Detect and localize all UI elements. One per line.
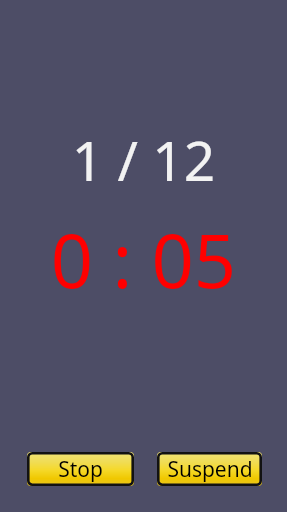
staticText: Stop xyxy=(58,455,103,484)
button[interactable]: Stop xyxy=(27,452,134,486)
button[interactable]: Suspend xyxy=(157,452,262,486)
staticText: 1 / 12 xyxy=(0,122,287,197)
staticText: Suspend xyxy=(167,455,253,484)
staticText: 0 : 05 xyxy=(0,209,287,310)
